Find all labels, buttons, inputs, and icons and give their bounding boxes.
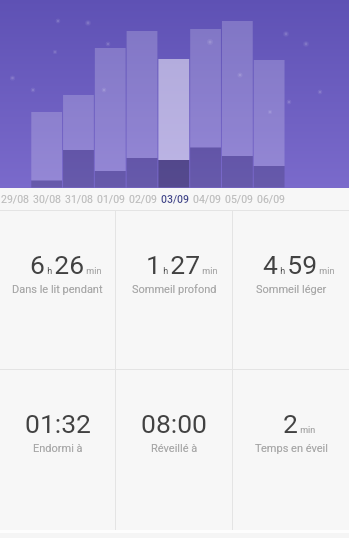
staticText: Sommeil profond <box>132 283 217 296</box>
staticText: Endormi à <box>33 442 83 455</box>
button[interactable]: 04/09 <box>191 188 223 210</box>
button[interactable]: 30/08 <box>31 188 63 210</box>
staticText: 4 h 59 min <box>263 249 335 280</box>
button[interactable]: 29/08 <box>0 188 31 210</box>
button[interactable]: 6 h 26 min <box>0 211 115 369</box>
button[interactable]: 08:00 <box>116 370 232 530</box>
staticText: 08:00 <box>141 408 207 439</box>
staticText: 30/08 <box>33 193 61 205</box>
staticText: 05/09 <box>225 193 253 205</box>
button[interactable]: 4 h 59 min <box>233 211 349 369</box>
button[interactable]: 01:32 <box>0 370 115 530</box>
staticText: 02/09 <box>129 193 157 205</box>
button[interactable]: 06/09 <box>255 188 287 210</box>
staticText: Sommeil léger <box>256 283 327 296</box>
staticText: 03/09 <box>161 193 189 205</box>
staticText: 2 min <box>283 408 316 439</box>
button[interactable]: 01/09 <box>95 188 127 210</box>
staticText: Réveillé à <box>151 442 198 455</box>
button[interactable]: 05/09 <box>223 188 255 210</box>
button[interactable]: 1 h 27 min <box>116 211 232 369</box>
staticText: Temps en éveil <box>255 442 328 455</box>
staticText: 6 h 26 min <box>30 249 102 280</box>
staticText: 1 h 27 min <box>146 249 218 280</box>
staticText: 31/08 <box>65 193 93 205</box>
button[interactable]: 2 min <box>233 370 349 530</box>
staticText: Dans le lit pendant <box>12 283 103 296</box>
staticText: 01:32 <box>25 408 91 439</box>
staticText: 06/09 <box>257 193 285 205</box>
button[interactable]: 02/09 <box>127 188 159 210</box>
staticText: 29/08 <box>1 193 29 205</box>
staticText: 04/09 <box>193 193 221 205</box>
button[interactable]: 03/09 <box>159 188 191 210</box>
staticText: 01/09 <box>97 193 125 205</box>
button[interactable]: 31/08 <box>63 188 95 210</box>
